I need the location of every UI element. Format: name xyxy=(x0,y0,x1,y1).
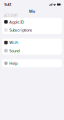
staticText: Wi-Fi xyxy=(9,40,18,45)
staticText: Help xyxy=(9,61,17,66)
staticText: 9:41 xyxy=(4,2,11,7)
staticText: Sound xyxy=(9,48,19,53)
staticText: Me xyxy=(29,8,35,14)
button[interactable]: Help xyxy=(2,59,62,67)
button[interactable]: Apple ID xyxy=(2,18,62,26)
staticText: Subscriptions xyxy=(9,27,32,33)
staticText: ACCOUNT xyxy=(4,14,17,17)
button[interactable]: Sound xyxy=(2,47,62,55)
staticText: Apple ID xyxy=(9,19,24,24)
button[interactable]: Wi-Fi xyxy=(2,38,62,47)
button[interactable]: Subscriptions xyxy=(2,26,62,34)
